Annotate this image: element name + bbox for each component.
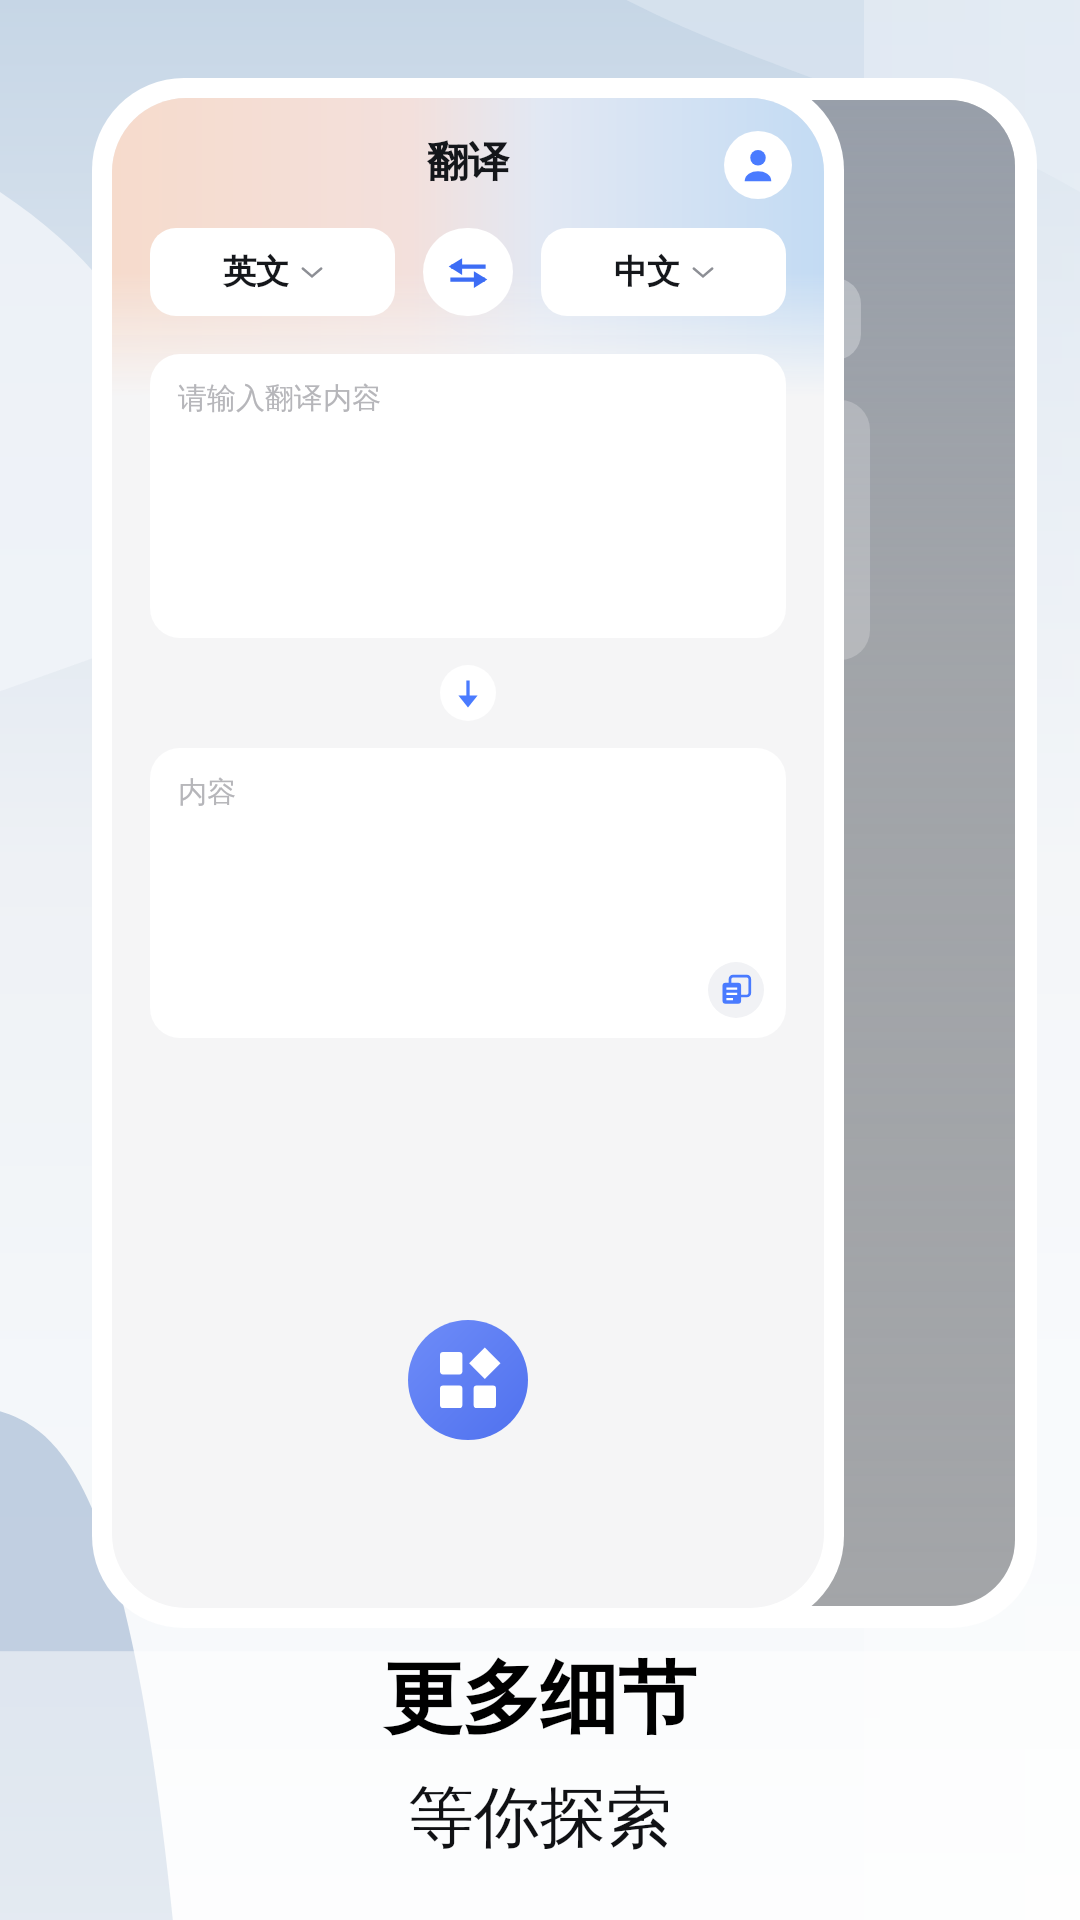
staticText: 中文 <box>614 251 680 293</box>
button[interactable]: 更多工具 <box>408 1320 528 1440</box>
button[interactable]: 复制 <box>708 962 764 1018</box>
button[interactable]: 切换语言 <box>423 228 513 316</box>
staticText: 请输入翻译内容 <box>178 380 381 417</box>
button[interactable]: 内容 <box>150 748 786 1038</box>
staticText: 更多细节 <box>384 1650 696 1748</box>
staticText: 翻译 <box>427 137 509 189</box>
button[interactable]: 翻译 <box>440 665 496 721</box>
staticText: 等你探索 <box>408 1776 672 1859</box>
button[interactable]: 个人中心 <box>724 131 792 199</box>
button[interactable]: 中文 <box>541 228 786 316</box>
staticText: 英文 <box>223 251 289 293</box>
staticText: 内容 <box>178 774 236 811</box>
button[interactable]: 英文 <box>150 228 395 316</box>
button[interactable]: 请输入翻译内容 <box>150 354 786 638</box>
